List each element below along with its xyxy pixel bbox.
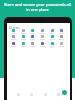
staticText: All items <box>9 26 20 30</box>
staticText: Store and secure your passwords all in o… <box>3 2 72 12</box>
